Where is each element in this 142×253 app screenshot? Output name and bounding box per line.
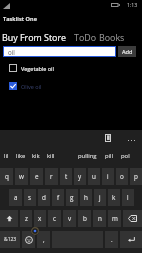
- button[interactable]: o: [116, 168, 128, 185]
- staticText: q: [5, 172, 9, 181]
- staticText: a: [14, 193, 18, 202]
- button[interactable]: e: [30, 168, 43, 185]
- staticText: i: [107, 172, 109, 181]
- button[interactable]: r: [45, 168, 58, 185]
- button[interactable]: pulling: [67, 146, 107, 166]
- staticText: Add: [122, 48, 133, 56]
- button[interactable]: i: [102, 168, 114, 185]
- button[interactable]: l: [122, 189, 134, 206]
- staticText: g: [70, 193, 74, 202]
- button[interactable]: c: [48, 210, 61, 227]
- staticText: ,: [43, 235, 45, 244]
- staticText: 1:13: [127, 1, 138, 8]
- button[interactable]: Shift: [0, 210, 18, 227]
- staticText: o: [120, 172, 124, 181]
- button[interactable]: n: [93, 210, 106, 227]
- staticText: kik: [32, 152, 40, 160]
- staticText: Olive oil: [21, 83, 42, 90]
- button[interactable]: Buy From Store: [2, 31, 67, 43]
- staticText: f: [57, 193, 60, 202]
- staticText: w: [19, 172, 24, 181]
- staticText: &123: [4, 236, 17, 243]
- button[interactable]: v: [63, 210, 76, 227]
- staticText: Tasklist One: [3, 15, 37, 23]
- button[interactable]: p: [130, 168, 142, 185]
- button[interactable]: h: [80, 189, 92, 206]
- staticText: x: [38, 214, 42, 223]
- staticText: Vegetable oil: [21, 65, 54, 72]
- staticText: t: [65, 172, 68, 181]
- staticText: n: [98, 214, 102, 223]
- staticText: d: [42, 193, 46, 202]
- button[interactable]: Save: [99, 130, 117, 146]
- button[interactable]: Books: [99, 31, 125, 43]
- button[interactable]: like: [12, 146, 29, 166]
- button[interactable]: w: [15, 168, 28, 185]
- button[interactable]: x: [34, 210, 46, 227]
- staticText: v: [68, 214, 72, 223]
- button[interactable]: Backspace: [123, 210, 142, 227]
- staticText: u: [92, 172, 96, 181]
- button[interactable]: ToDo: [74, 31, 97, 43]
- staticText: l: [127, 193, 129, 202]
- button[interactable]: Olive oil: [0, 79, 142, 93]
- button[interactable]: pill: [101, 146, 118, 166]
- button[interactable]: s: [24, 189, 36, 206]
- button[interactable]: d: [38, 189, 50, 206]
- button[interactable]: b: [78, 210, 91, 227]
- staticText: pulling: [78, 152, 97, 160]
- staticText: ToDo: [74, 31, 97, 43]
- button[interactable]: t: [60, 168, 72, 185]
- staticText: Buy From Store: [2, 31, 67, 43]
- button[interactable]: pol: [117, 146, 134, 166]
- staticText: y: [78, 172, 82, 181]
- staticText: oil: [8, 48, 15, 56]
- button[interactable]: .: [105, 231, 118, 248]
- staticText: kill: [47, 152, 55, 160]
- staticText: m: [112, 214, 118, 223]
- button[interactable]: ,: [37, 231, 50, 248]
- button[interactable]: q: [0, 168, 13, 185]
- staticText: lil: [4, 152, 9, 160]
- staticText: e: [35, 172, 39, 181]
- button[interactable]: More options: [122, 132, 140, 148]
- staticText: j: [99, 193, 101, 202]
- button[interactable]: u: [88, 168, 100, 185]
- button[interactable]: z: [20, 210, 32, 227]
- button[interactable]: Add: [118, 46, 136, 57]
- staticText: z: [25, 214, 28, 223]
- staticText: h: [84, 193, 88, 202]
- staticText: pol: [121, 152, 130, 160]
- button[interactable]: oil: [3, 46, 116, 57]
- button[interactable]: y: [74, 168, 86, 185]
- button[interactable]: k: [108, 189, 120, 206]
- button[interactable]: kik: [28, 146, 43, 166]
- staticText: r: [50, 172, 53, 181]
- staticText: p: [134, 172, 138, 181]
- staticText: Books: [99, 31, 125, 43]
- button[interactable]: m: [108, 210, 121, 227]
- button[interactable]: f: [52, 189, 64, 206]
- button[interactable]: lil: [0, 146, 12, 166]
- staticText: k: [112, 193, 116, 202]
- button[interactable]: Vegetable oil: [0, 61, 142, 75]
- button[interactable]: &123: [0, 231, 20, 248]
- staticText: pill: [105, 152, 114, 160]
- staticText: .: [111, 235, 113, 244]
- button[interactable]: Enter: [120, 231, 142, 248]
- staticText: like: [16, 152, 26, 160]
- button[interactable]: j: [94, 189, 106, 206]
- button[interactable]: g: [66, 189, 78, 206]
- staticText: c: [53, 214, 57, 223]
- button[interactable]: kill: [42, 146, 60, 166]
- button[interactable]: a: [9, 189, 22, 206]
- button[interactable]: Emoji: [22, 231, 35, 248]
- staticText: b: [83, 214, 87, 223]
- staticText: s: [28, 193, 32, 202]
